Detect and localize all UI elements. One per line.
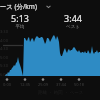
staticText: 4:30: [0, 46, 8, 51]
button[interactable]: 3:44: [56, 12, 90, 30]
button[interactable]: ペース (分/km): [0, 0, 100, 12]
staticText: 5:00: [0, 55, 8, 60]
button[interactable]: 5:13: [3, 12, 37, 30]
staticText: 3:30: [0, 29, 8, 34]
staticText: ペース (分/km): [0, 2, 37, 11]
staticText: 25:09: [34, 82, 52, 87]
staticText: 5:30: [0, 63, 8, 68]
staticText: 50:18: [70, 82, 88, 87]
staticText: 3:44: [56, 12, 90, 24]
staticText: 37:44: [52, 82, 70, 87]
staticText: 12:35: [16, 82, 34, 87]
staticText: ベスト: [56, 24, 90, 30]
staticText: 5:13: [3, 12, 37, 24]
staticText: 4:00: [0, 38, 8, 43]
other: Change metric: [45, 3, 52, 10]
staticText: 0:00: [0, 82, 16, 87]
staticText: 平均: [3, 24, 37, 30]
staticText: 6:00: [0, 72, 8, 77]
